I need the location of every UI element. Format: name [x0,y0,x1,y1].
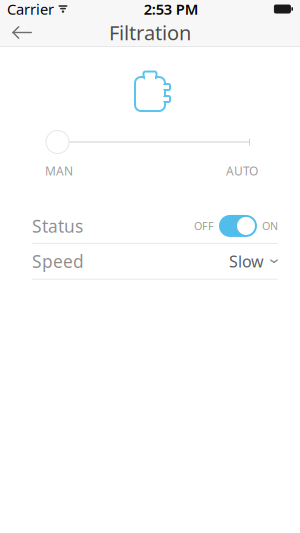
staticText: Status [32,214,83,237]
button[interactable]: Speed [0,244,300,279]
button[interactable]: Mode slider [46,130,69,153]
button[interactable]: Status on [219,215,257,237]
staticText: Speed [32,250,84,273]
staticText: Filtration [109,19,191,46]
staticText: 2:53 PM [144,0,199,19]
staticText: ON [262,219,278,233]
staticText: MAN [45,163,73,179]
staticText: OFF [194,219,214,233]
staticText: Slow [229,251,264,272]
button[interactable]: Back [0,18,44,46]
staticText: AUTO [226,163,258,179]
staticText: Carrier [7,0,54,19]
